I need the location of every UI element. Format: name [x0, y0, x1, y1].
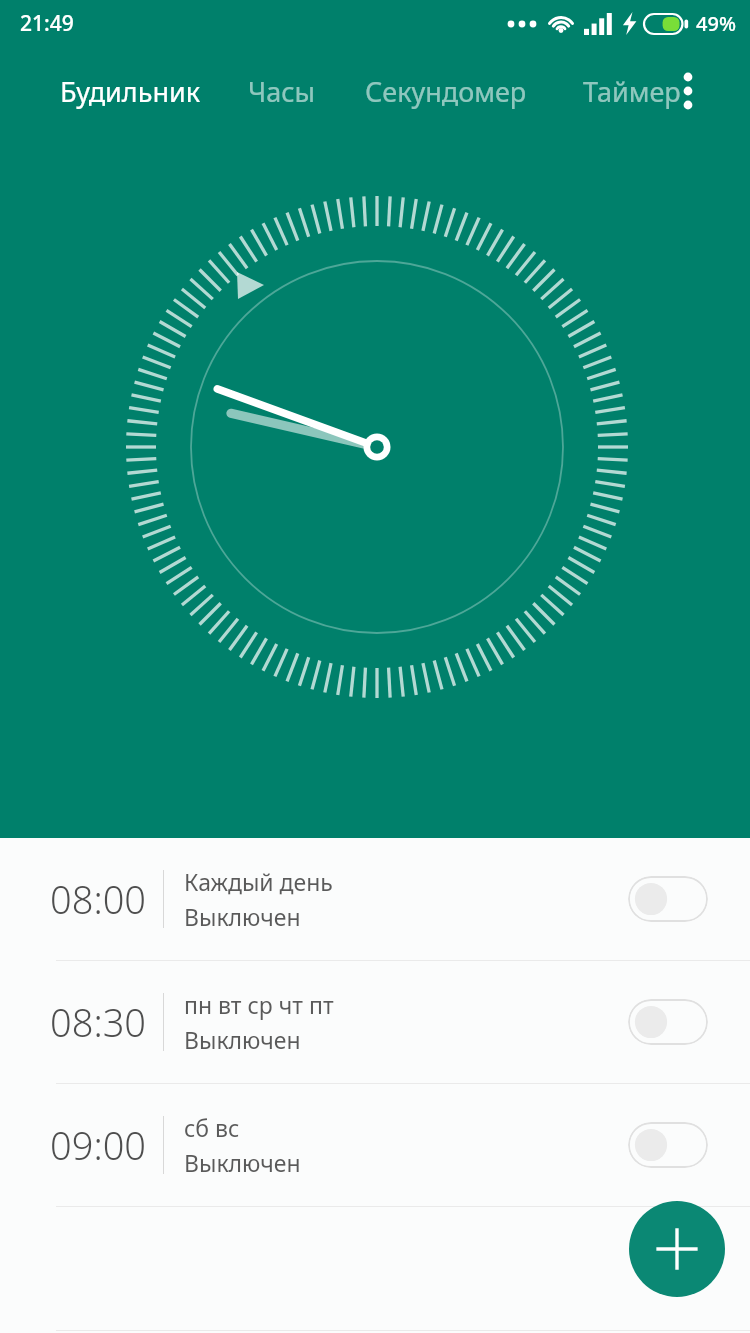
staticText: Каждый день — [184, 866, 333, 897]
staticText: Выключен — [184, 1147, 301, 1178]
button[interactable]: 09:00 — [0, 1084, 750, 1206]
button[interactable]: Будильник 08:30 выключен — [628, 999, 708, 1045]
staticText: Таймер — [583, 73, 681, 110]
button[interactable]: 08:00 — [0, 838, 750, 960]
button[interactable]: Будильник — [60, 60, 201, 122]
staticText: Выключен — [184, 1024, 301, 1055]
staticText: 08:00 — [50, 873, 147, 925]
staticText: Секундомер — [365, 73, 527, 110]
staticText: Будильник — [60, 73, 201, 110]
button[interactable]: Часы — [248, 60, 315, 122]
button[interactable]: 08:30 — [0, 961, 750, 1083]
staticText: 09:00 — [50, 1119, 147, 1171]
button[interactable]: Таймер — [583, 60, 681, 122]
staticText: сб вс — [184, 1112, 240, 1143]
staticText: пн вт ср чт пт — [184, 989, 334, 1020]
button[interactable]: Добавить будильник — [629, 1201, 725, 1297]
staticText: Выключен — [184, 901, 301, 932]
staticText: Часы — [248, 73, 315, 110]
button[interactable]: Ещё — [672, 66, 722, 116]
staticText: 21:49 — [20, 9, 74, 38]
button[interactable]: Будильник 09:00 выключен — [628, 1122, 708, 1168]
staticText: 49% — [696, 10, 736, 37]
button[interactable]: Будильник 08:00 выключен — [628, 876, 708, 922]
staticText: 08:30 — [50, 996, 147, 1048]
button[interactable]: Секундомер — [365, 60, 527, 122]
